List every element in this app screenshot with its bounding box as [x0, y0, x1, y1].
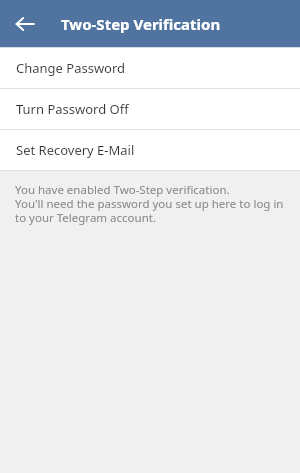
button[interactable]: Turn Password Off: [0, 89, 300, 129]
staticText: Two-Step Verification: [61, 14, 221, 34]
button[interactable]: Set Recovery E-Mail: [0, 130, 300, 170]
staticText: Set Recovery E-Mail: [16, 141, 135, 159]
button[interactable]: Back: [14, 13, 36, 35]
staticText: Change Password: [16, 59, 126, 77]
button[interactable]: Change Password: [0, 48, 300, 88]
staticText: Turn Password Off: [16, 100, 129, 118]
staticText: You have enabled Two-Step verification. …: [15, 182, 284, 225]
